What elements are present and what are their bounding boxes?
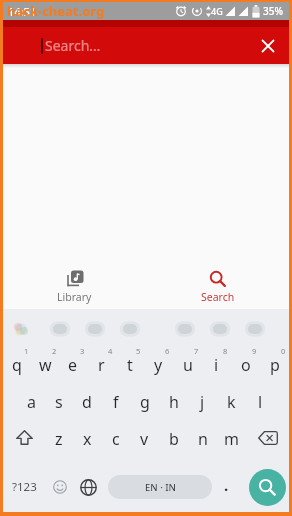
staticText: j <box>200 391 205 413</box>
staticText: 0 <box>281 346 286 356</box>
staticText: . <box>224 475 229 495</box>
staticText: n <box>198 428 208 450</box>
button[interactable]: p <box>260 345 289 382</box>
staticText: 5 <box>136 346 141 356</box>
button[interactable]: w <box>31 345 59 382</box>
button[interactable]: q <box>3 345 31 382</box>
button[interactable]: ?123 <box>3 463 45 511</box>
staticText: i <box>214 354 219 376</box>
button[interactable] <box>74 463 103 511</box>
staticText: s <box>55 391 63 413</box>
button[interactable] <box>45 463 74 511</box>
button[interactable]: a <box>17 382 45 419</box>
staticText: 9 <box>252 346 257 356</box>
button[interactable]: Library <box>3 264 146 309</box>
staticText: l <box>258 391 263 413</box>
staticText: 35% <box>263 4 283 18</box>
button[interactable]: i <box>202 345 231 382</box>
button[interactable] <box>256 34 280 58</box>
staticText: EN · IN <box>145 481 176 494</box>
button[interactable]: m <box>217 419 246 456</box>
button[interactable]: g <box>130 382 159 419</box>
button[interactable]: o <box>231 345 260 382</box>
staticText: b <box>169 428 179 450</box>
button[interactable]: l <box>246 382 275 419</box>
staticText: x <box>83 428 92 450</box>
button[interactable]: Search… <box>3 27 289 64</box>
staticText: h <box>169 391 179 413</box>
button[interactable]: r <box>87 345 115 382</box>
button[interactable]: k <box>217 382 246 419</box>
staticText: d <box>82 391 92 413</box>
button[interactable]: . <box>217 463 246 511</box>
button[interactable]: c <box>101 419 130 456</box>
staticText: v <box>140 428 149 450</box>
button[interactable] <box>246 419 289 456</box>
staticText: g <box>140 391 150 413</box>
button[interactable]: e <box>59 345 87 382</box>
button[interactable]: v <box>130 419 159 456</box>
staticText: o <box>241 354 251 376</box>
button[interactable]: Search <box>146 264 289 309</box>
button[interactable]: s <box>45 382 73 419</box>
button[interactable]: d <box>73 382 101 419</box>
staticText: e <box>68 354 78 376</box>
staticText: t <box>127 354 133 376</box>
button[interactable]: x <box>73 419 101 456</box>
button[interactable]: f <box>101 382 130 419</box>
button[interactable]: b <box>159 419 188 456</box>
staticText: u <box>183 354 193 376</box>
staticText: 3 <box>80 346 85 356</box>
staticText: 1 <box>24 346 29 356</box>
staticText: k <box>227 391 236 413</box>
button[interactable]: y <box>144 345 173 382</box>
button[interactable] <box>249 469 286 506</box>
staticText: 2 <box>52 346 57 356</box>
staticText: p <box>270 354 280 376</box>
staticText: y <box>154 354 163 376</box>
staticText: Library <box>57 290 92 304</box>
staticText: 4 <box>108 346 113 356</box>
staticText: 7 <box>194 346 199 356</box>
button[interactable]: z <box>45 419 73 456</box>
button[interactable]: h <box>159 382 188 419</box>
button[interactable]: u <box>173 345 202 382</box>
staticText: 14:51 <box>8 4 37 19</box>
button[interactable]: EN · IN <box>108 475 212 499</box>
button[interactable] <box>246 463 289 511</box>
staticText: Search <box>201 290 235 304</box>
staticText: 8 <box>223 346 228 356</box>
staticText: a <box>27 391 36 413</box>
staticText: z <box>55 428 63 450</box>
staticText: m <box>224 428 239 450</box>
button[interactable]: j <box>188 382 217 419</box>
button[interactable] <box>3 419 45 456</box>
staticText: c <box>112 428 120 450</box>
staticText: w <box>39 354 52 376</box>
button[interactable]: t <box>115 345 144 382</box>
staticText: hack-cheat.org <box>7 2 105 20</box>
staticText: Search… <box>45 36 101 55</box>
staticText: f <box>113 391 119 413</box>
button[interactable]: n <box>188 419 217 456</box>
staticText: 6 <box>165 346 170 356</box>
staticText: 4G <box>211 5 223 17</box>
staticText: ?123 <box>12 479 37 495</box>
staticText: r <box>98 354 105 376</box>
staticText: q <box>12 354 22 376</box>
